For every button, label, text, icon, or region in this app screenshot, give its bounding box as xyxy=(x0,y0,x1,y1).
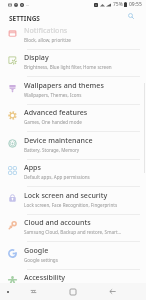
staticText: Google settings xyxy=(24,257,58,263)
button[interactable]: Lock screen and security xyxy=(0,184,146,212)
staticText: Brightness, Blue light filter, Home scre… xyxy=(24,64,112,70)
staticText: Games, One handed mode xyxy=(24,119,82,125)
staticText: Advanced features xyxy=(24,107,88,117)
staticText: Accessibility xyxy=(24,272,66,282)
button[interactable]: Display xyxy=(0,46,146,74)
button[interactable]: Wallpapers and themes xyxy=(0,74,146,102)
button[interactable]: Advanced features xyxy=(0,101,146,129)
button[interactable]: Hide navigation bar xyxy=(5,289,10,294)
button[interactable]: Back xyxy=(105,284,120,299)
staticText: SETTINGS xyxy=(9,14,40,23)
staticText: Lock screen, Face Recognition, Fingerpri… xyxy=(24,202,118,208)
staticText: Cloud and accounts xyxy=(24,217,91,227)
staticText: Wallpapers and themes xyxy=(24,80,104,90)
staticText: ... xyxy=(26,2,30,7)
staticText: Default apps, App permissions xyxy=(24,174,90,180)
staticText: Device maintenance xyxy=(24,135,93,145)
staticText: 09:55 xyxy=(129,1,142,8)
button[interactable]: Accessibility xyxy=(0,266,146,283)
button[interactable]: Google xyxy=(0,239,146,267)
button[interactable]: Search xyxy=(126,11,136,21)
button[interactable]: Cloud and accounts xyxy=(0,211,146,239)
staticText: Lock screen and security xyxy=(24,190,108,200)
button[interactable]: Apps xyxy=(0,156,146,184)
button[interactable]: Device maintenance xyxy=(0,129,146,157)
staticText: Notifications xyxy=(24,25,68,35)
staticText: Block, allow, prioritize xyxy=(24,37,71,43)
staticText: Samsung Cloud, Backup and restore, Smart… xyxy=(24,229,122,235)
staticText: Google xyxy=(24,245,49,255)
button[interactable]: Notifications xyxy=(0,23,146,47)
staticText: Apps xyxy=(24,162,41,172)
staticText: Battery, Storage, Memory xyxy=(24,147,80,153)
button[interactable]: Home xyxy=(65,284,81,300)
button[interactable]: Recents xyxy=(26,284,41,299)
staticText: Wallpapers, Themes, Icons xyxy=(24,92,82,98)
staticText: 75% xyxy=(113,1,123,8)
staticText: Display xyxy=(24,52,49,62)
